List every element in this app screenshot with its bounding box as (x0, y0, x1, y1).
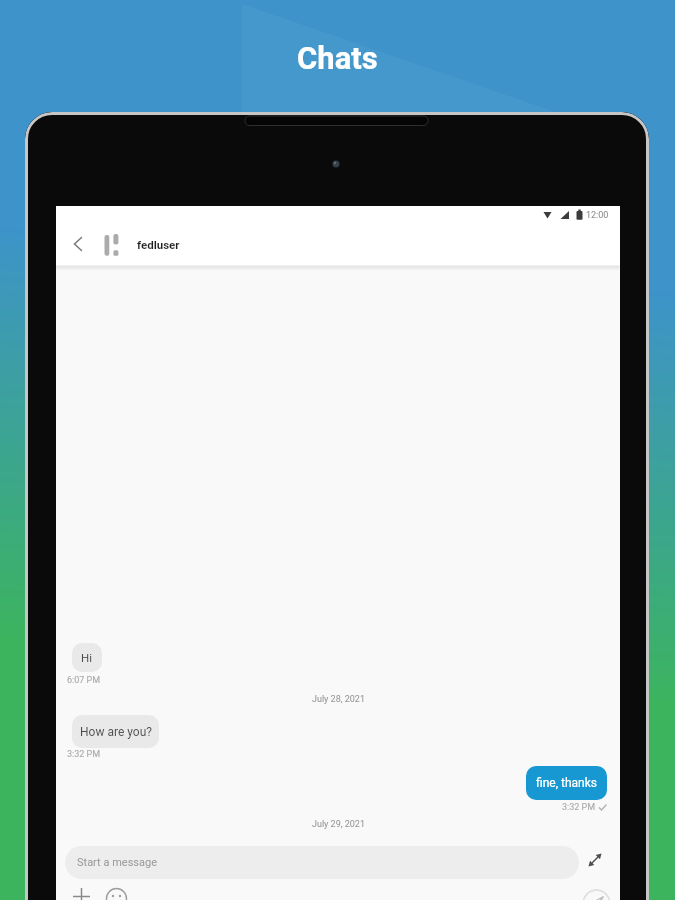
staticText: 12:00 (586, 210, 609, 221)
button[interactable] (582, 889, 611, 900)
staticText: Chats (297, 40, 378, 76)
button[interactable] (62, 228, 94, 260)
staticText: 6:07 PM (67, 675, 101, 686)
button[interactable]: How are you? (72, 715, 159, 748)
button[interactable] (70, 885, 92, 900)
staticText: Start a message (77, 856, 157, 869)
button[interactable]: Start a message (65, 846, 579, 879)
staticText: How are you? (80, 725, 152, 739)
button[interactable] (105, 887, 127, 900)
staticText: 3:32 PM (562, 802, 596, 813)
staticText: fedluser (137, 238, 180, 251)
staticText: 3:32 PM (67, 749, 101, 760)
button[interactable]: fedluser (100, 228, 260, 260)
button[interactable]: Hi (72, 643, 102, 672)
staticText: July 28, 2021 (312, 694, 365, 705)
staticText: Hi (81, 651, 93, 664)
staticText: July 29, 2021 (312, 819, 365, 830)
button[interactable] (584, 849, 606, 871)
button[interactable]: fine, thanks (526, 766, 607, 800)
staticText: fine, thanks (536, 776, 597, 790)
